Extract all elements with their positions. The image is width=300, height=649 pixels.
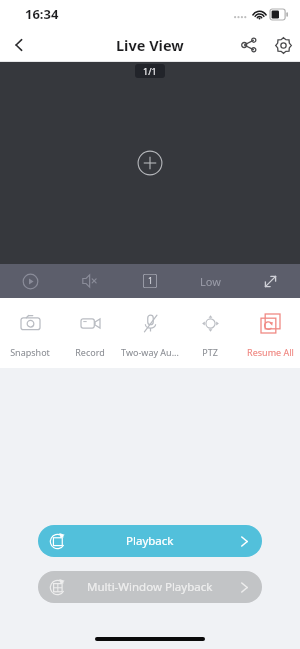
staticText: Live View (116, 35, 184, 55)
button[interactable]: Fullscreen (240, 264, 300, 298)
button[interactable]: Share (232, 28, 266, 62)
button[interactable]: PTZ (180, 305, 240, 358)
button[interactable]: Quality Low (180, 264, 240, 298)
staticText: Low (200, 274, 221, 289)
button[interactable]: Multi-Window Playback (38, 571, 262, 603)
staticText: 1/1 (143, 65, 157, 77)
button[interactable]: Resume All (240, 305, 300, 358)
staticText: Record (75, 346, 105, 358)
button[interactable]: Back (0, 28, 40, 62)
button[interactable]: Mute (60, 264, 120, 298)
button[interactable]: Two-way Au... (120, 305, 180, 358)
staticText: 1 (148, 275, 153, 287)
staticText: Multi-Window Playback (87, 579, 213, 595)
staticText: Resume All (247, 346, 294, 358)
staticText: PTZ (202, 346, 218, 358)
button[interactable]: Settings (266, 28, 300, 62)
button[interactable]: Record (60, 305, 120, 358)
button[interactable]: Playback (38, 525, 262, 557)
button[interactable]: Play (0, 264, 60, 298)
button[interactable]: Stream 1 (120, 264, 180, 298)
button[interactable]: Snapshot (0, 305, 60, 358)
staticText: Playback (126, 533, 174, 549)
staticText: Two-way Au... (121, 346, 179, 358)
staticText: 16:34 (25, 5, 59, 23)
staticText: Snapshot (10, 346, 50, 358)
button[interactable]: Add camera (127, 140, 173, 186)
